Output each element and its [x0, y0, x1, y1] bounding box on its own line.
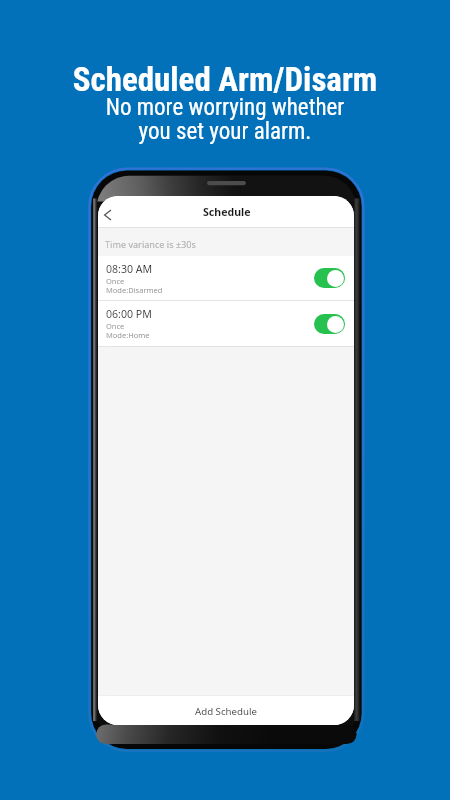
- button[interactable]: Toggle schedule: [314, 314, 345, 334]
- staticText: Add Schedule: [195, 705, 257, 718]
- staticText: Once: [106, 321, 125, 331]
- button[interactable]: 06:00 PM: [98, 301, 354, 346]
- staticText: Time variance is ±30s: [105, 238, 196, 250]
- staticText: 06:00 PM: [106, 307, 152, 321]
- staticText: No more worrying whether you set your al…: [0, 94, 450, 145]
- button[interactable]: Back: [98, 200, 118, 220]
- staticText: 08:30 AM: [106, 262, 153, 276]
- staticText: Scheduled Arm/Disarm: [0, 60, 450, 99]
- button[interactable]: 08:30 AM: [98, 256, 354, 300]
- button[interactable]: Toggle schedule: [314, 268, 345, 288]
- staticText: Mode:Home: [106, 330, 150, 340]
- staticText: Mode:Disarmed: [106, 285, 163, 295]
- staticText: Once: [106, 276, 125, 286]
- staticText: Schedule: [203, 205, 251, 219]
- button[interactable]: Add Schedule: [98, 696, 354, 725]
